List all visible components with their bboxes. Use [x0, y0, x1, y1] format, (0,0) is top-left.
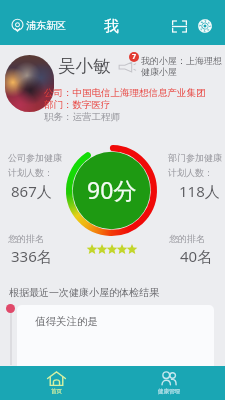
button[interactable]: 首页: [0, 366, 112, 400]
staticText: 健康管理: [158, 388, 180, 395]
staticText: 首页: [51, 388, 62, 395]
staticText: 浦东新区: [26, 19, 66, 32]
button[interactable]: 健康管理: [112, 366, 225, 400]
staticText: 计划人数：: [8, 167, 53, 178]
staticText: 90分: [87, 174, 137, 205]
button[interactable]: 值得关注的是: [17, 305, 214, 366]
staticText: 您的排名: [8, 233, 44, 244]
staticText: 336名: [11, 246, 52, 266]
staticText: 计划人数：: [168, 167, 213, 178]
staticText: 我: [104, 17, 119, 36]
staticText: 值得关注的是: [35, 315, 98, 328]
staticText: 部门参加健康: [168, 152, 222, 163]
staticText: 吴小敏: [58, 55, 111, 77]
staticText: 部门：数字医疗: [44, 99, 111, 111]
button[interactable]: Profile photo: [5, 55, 54, 112]
staticText: 公司参加健康: [8, 152, 62, 163]
button[interactable]: 浦东新区: [11, 19, 66, 32]
staticText: 118人: [179, 181, 220, 201]
staticText: 公司：中国电信上海理想信息产业集团: [44, 87, 206, 99]
button[interactable]: 7: [118, 52, 222, 74]
staticText: 职务：运营工程师: [44, 111, 120, 123]
button[interactable]: Settings: [192, 13, 218, 39]
staticText: 根据最近一次健康小屋的体检结果: [9, 286, 159, 299]
staticText: 健康小屋: [141, 66, 177, 77]
staticText: 7: [132, 52, 137, 62]
staticText: 您的排名: [169, 233, 205, 244]
button[interactable]: Scan code: [166, 13, 192, 39]
staticText: 867人: [11, 181, 52, 201]
staticText: 40名: [180, 246, 213, 266]
staticText: 我的小屋：上海理想: [141, 55, 222, 66]
